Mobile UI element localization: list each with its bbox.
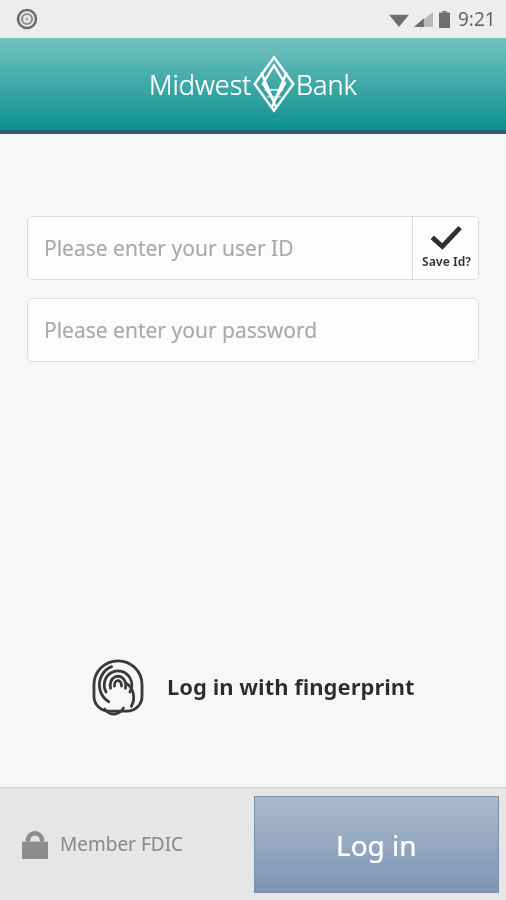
staticText: Please enter your user ID xyxy=(44,234,294,263)
staticText: Save Id? xyxy=(422,253,471,269)
button[interactable]: Save Id? xyxy=(413,216,479,280)
staticText: Member FDIC xyxy=(60,831,184,857)
staticText: Please enter your password xyxy=(44,316,318,345)
button[interactable]: Please enter your password xyxy=(27,298,479,362)
staticText: Log in with fingerprint xyxy=(167,671,415,701)
button[interactable]: Please enter your user ID xyxy=(27,216,412,280)
button[interactable]: Log in xyxy=(254,796,499,893)
staticText: 9:21 xyxy=(458,6,496,32)
button[interactable]: Log in with fingerprint xyxy=(0,651,506,721)
staticText: Midwest xyxy=(149,66,252,103)
button[interactable]: Member FDIC xyxy=(22,829,184,859)
staticText: Log in xyxy=(336,826,417,864)
staticText: Bank xyxy=(296,66,357,103)
